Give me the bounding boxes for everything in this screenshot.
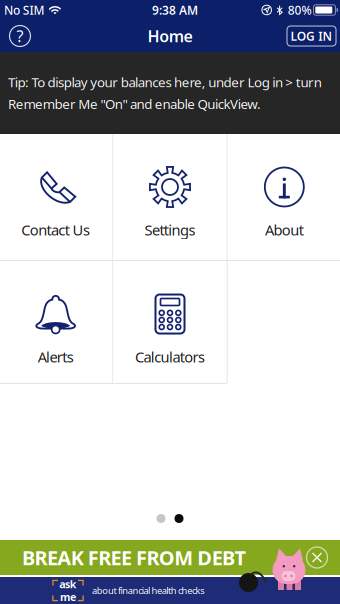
button[interactable]: Calculators <box>113 261 227 383</box>
button[interactable]: Alerts <box>0 261 112 383</box>
staticText: about financial health checks <box>92 584 204 597</box>
staticText: Remember Me "On" and enable QuickView. <box>8 95 261 113</box>
button[interactable]: Contact Us <box>0 134 112 260</box>
staticText: Home <box>147 25 192 47</box>
staticText: About <box>265 220 304 239</box>
staticText: ask <box>59 577 77 591</box>
staticText: 80% <box>288 2 311 18</box>
staticText: ? <box>16 25 23 47</box>
button[interactable]: Close ad <box>301 541 333 574</box>
button[interactable]: Settings <box>113 134 227 260</box>
staticText: LOG IN <box>290 28 332 44</box>
staticText: No SIM <box>4 2 44 18</box>
staticText: Alerts <box>38 347 74 366</box>
button[interactable]: About <box>228 134 340 260</box>
staticText: Settings <box>145 220 195 239</box>
staticText: Calculators <box>135 347 205 366</box>
staticText: Tip: To display your balances here, unde… <box>8 73 322 91</box>
staticText: 9:38 AM <box>152 2 198 18</box>
staticText: me <box>60 590 76 604</box>
button[interactable]: Help <box>0 20 40 52</box>
staticText: Contact Us <box>21 220 90 239</box>
button[interactable]: LOG IN <box>287 26 340 46</box>
staticText: BREAK FREE FROM DEBT <box>22 544 247 571</box>
